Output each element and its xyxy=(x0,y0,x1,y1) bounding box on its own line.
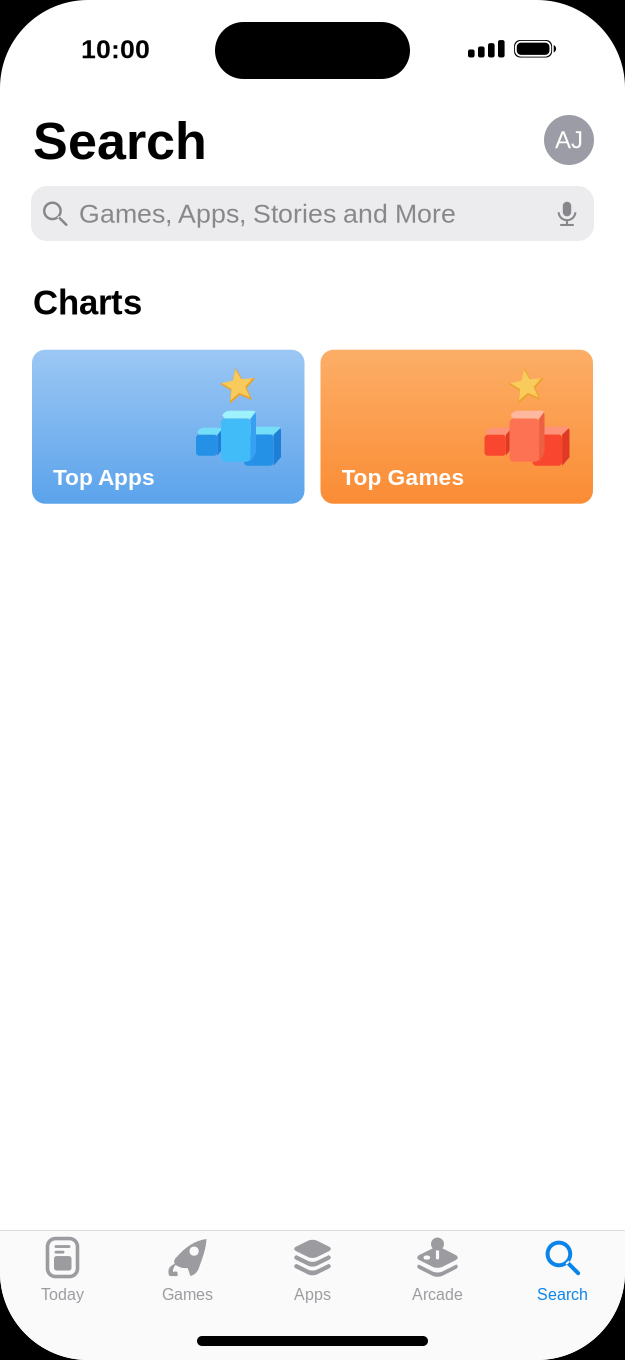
staticText: 10:00 xyxy=(81,34,150,64)
button[interactable]: Account xyxy=(544,115,594,165)
button[interactable]: Top Games xyxy=(320,350,593,504)
staticText: Top Apps xyxy=(53,464,155,490)
staticText: Games, Apps, Stories and More xyxy=(79,199,456,228)
staticText: Search xyxy=(33,112,207,170)
staticText: Search xyxy=(537,1286,588,1303)
button[interactable]: Games xyxy=(125,1227,250,1313)
button[interactable]: Arcade xyxy=(375,1227,500,1313)
staticText: Arcade xyxy=(412,1286,463,1303)
staticText: Games xyxy=(162,1286,213,1303)
staticText: Top Games xyxy=(341,464,464,490)
button[interactable]: Games, Apps, Stories and More xyxy=(31,186,594,241)
staticText: AJ xyxy=(555,127,583,153)
button[interactable]: Top Apps xyxy=(32,350,304,504)
staticText: Today xyxy=(41,1286,84,1303)
button[interactable]: Search xyxy=(500,1227,625,1313)
staticText: Apps xyxy=(294,1286,331,1303)
button[interactable]: Apps xyxy=(250,1227,375,1313)
staticText: Charts xyxy=(33,283,142,322)
button[interactable]: Today xyxy=(0,1227,125,1313)
